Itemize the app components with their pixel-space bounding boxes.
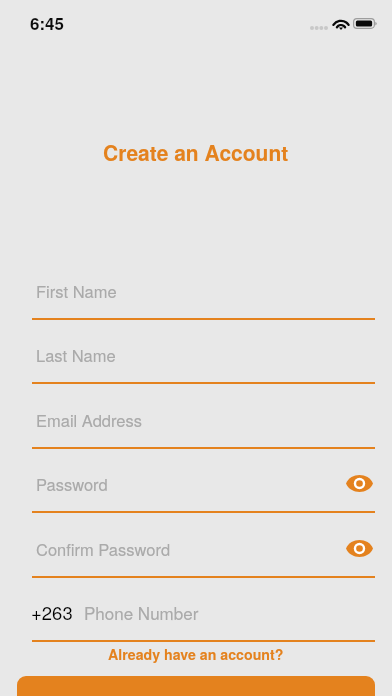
staticText: Email Address — [36, 408, 143, 432]
button[interactable]: Show password — [342, 466, 376, 500]
staticText: Phone Number — [84, 600, 199, 624]
button[interactable]: Show password — [342, 531, 376, 565]
staticText: Create an Account — [103, 137, 289, 167]
staticText: Password — [36, 472, 108, 496]
staticText: 6:45 — [30, 11, 65, 35]
button[interactable]: Already have an account? — [98, 641, 294, 667]
button[interactable]: First Name — [0, 270, 392, 318]
staticText: Confirm Password — [36, 537, 171, 561]
button[interactable]: +263 — [0, 592, 392, 640]
button[interactable]: Confirm Password — [0, 528, 392, 576]
staticText: Last Name — [36, 343, 116, 367]
button[interactable]: Email Address — [0, 399, 392, 447]
staticText: +263 — [31, 599, 73, 625]
staticText: Already have an account? — [108, 644, 284, 664]
button[interactable]: Sign Up — [17, 676, 375, 696]
button[interactable]: Last Name — [0, 334, 392, 382]
staticText: First Name — [36, 279, 117, 303]
button[interactable]: Password — [0, 463, 392, 511]
